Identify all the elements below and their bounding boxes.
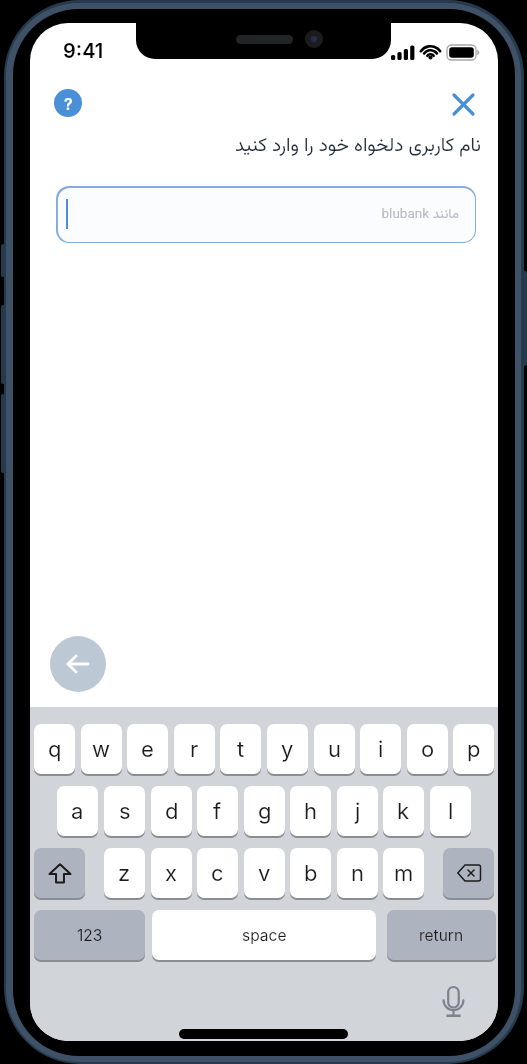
- button[interactable]: i: [360, 724, 401, 774]
- button[interactable]: c: [197, 848, 238, 898]
- button[interactable]: g: [244, 786, 285, 836]
- staticText: return: [419, 926, 464, 945]
- button[interactable]: s: [104, 786, 145, 836]
- button[interactable]: [443, 848, 494, 898]
- button[interactable]: k: [383, 786, 424, 836]
- staticText: مانند blubank: [381, 204, 459, 225]
- staticText: a: [71, 798, 84, 825]
- button[interactable]: q: [34, 724, 75, 774]
- button[interactable]: f: [197, 786, 238, 836]
- button[interactable]: a: [57, 786, 98, 836]
- staticText: z: [118, 860, 131, 887]
- staticText: f: [213, 798, 222, 825]
- staticText: g: [258, 798, 272, 825]
- button[interactable]: e: [127, 724, 168, 774]
- button[interactable]: p: [453, 724, 494, 774]
- button[interactable]: مانند blubank: [56, 186, 476, 243]
- staticText: m: [394, 860, 414, 887]
- button[interactable]: [50, 636, 106, 692]
- button[interactable]: [449, 90, 477, 118]
- staticText: n: [351, 860, 364, 887]
- button[interactable]: space: [152, 910, 376, 960]
- staticText: j: [355, 798, 361, 825]
- staticText: t: [237, 736, 245, 763]
- staticText: v: [258, 860, 271, 887]
- button[interactable]: h: [290, 786, 331, 836]
- staticText: q: [48, 736, 62, 763]
- button[interactable]: u: [314, 724, 355, 774]
- button[interactable]: o: [407, 724, 448, 774]
- staticText: c: [211, 860, 224, 887]
- staticText: ?: [64, 94, 73, 113]
- staticText: space: [242, 926, 287, 945]
- staticText: u: [328, 736, 342, 763]
- button[interactable]: 123: [34, 910, 145, 960]
- button[interactable]: y: [267, 724, 308, 774]
- staticText: p: [467, 736, 481, 763]
- button[interactable]: d: [151, 786, 192, 836]
- staticText: 123: [77, 926, 103, 945]
- staticText: w: [92, 736, 111, 763]
- staticText: s: [119, 798, 131, 825]
- staticText: y: [281, 736, 294, 763]
- staticText: b: [304, 860, 318, 887]
- button[interactable]: w: [81, 724, 122, 774]
- button[interactable]: z: [104, 848, 145, 898]
- staticText: نام کاربری دلخواه خود را وارد کنید: [30, 132, 481, 162]
- button[interactable]: v: [244, 848, 285, 898]
- staticText: 9:41: [63, 39, 104, 63]
- button[interactable]: return: [387, 910, 496, 960]
- staticText: e: [141, 736, 154, 763]
- staticText: r: [190, 736, 199, 763]
- button[interactable]: b: [290, 848, 331, 898]
- staticText: x: [165, 860, 178, 887]
- button[interactable]: [34, 848, 85, 898]
- button[interactable]: l: [430, 786, 471, 836]
- staticText: k: [397, 798, 410, 825]
- staticText: h: [304, 798, 318, 825]
- staticText: i: [378, 736, 384, 763]
- button[interactable]: x: [151, 848, 192, 898]
- staticText: o: [421, 736, 435, 763]
- button[interactable]: m: [383, 848, 424, 898]
- staticText: l: [448, 798, 454, 825]
- button[interactable]: ?: [54, 89, 82, 117]
- button[interactable]: t: [220, 724, 261, 774]
- button[interactable]: j: [337, 786, 378, 836]
- button[interactable]: r: [174, 724, 215, 774]
- button[interactable]: n: [337, 848, 378, 898]
- staticText: d: [165, 798, 179, 825]
